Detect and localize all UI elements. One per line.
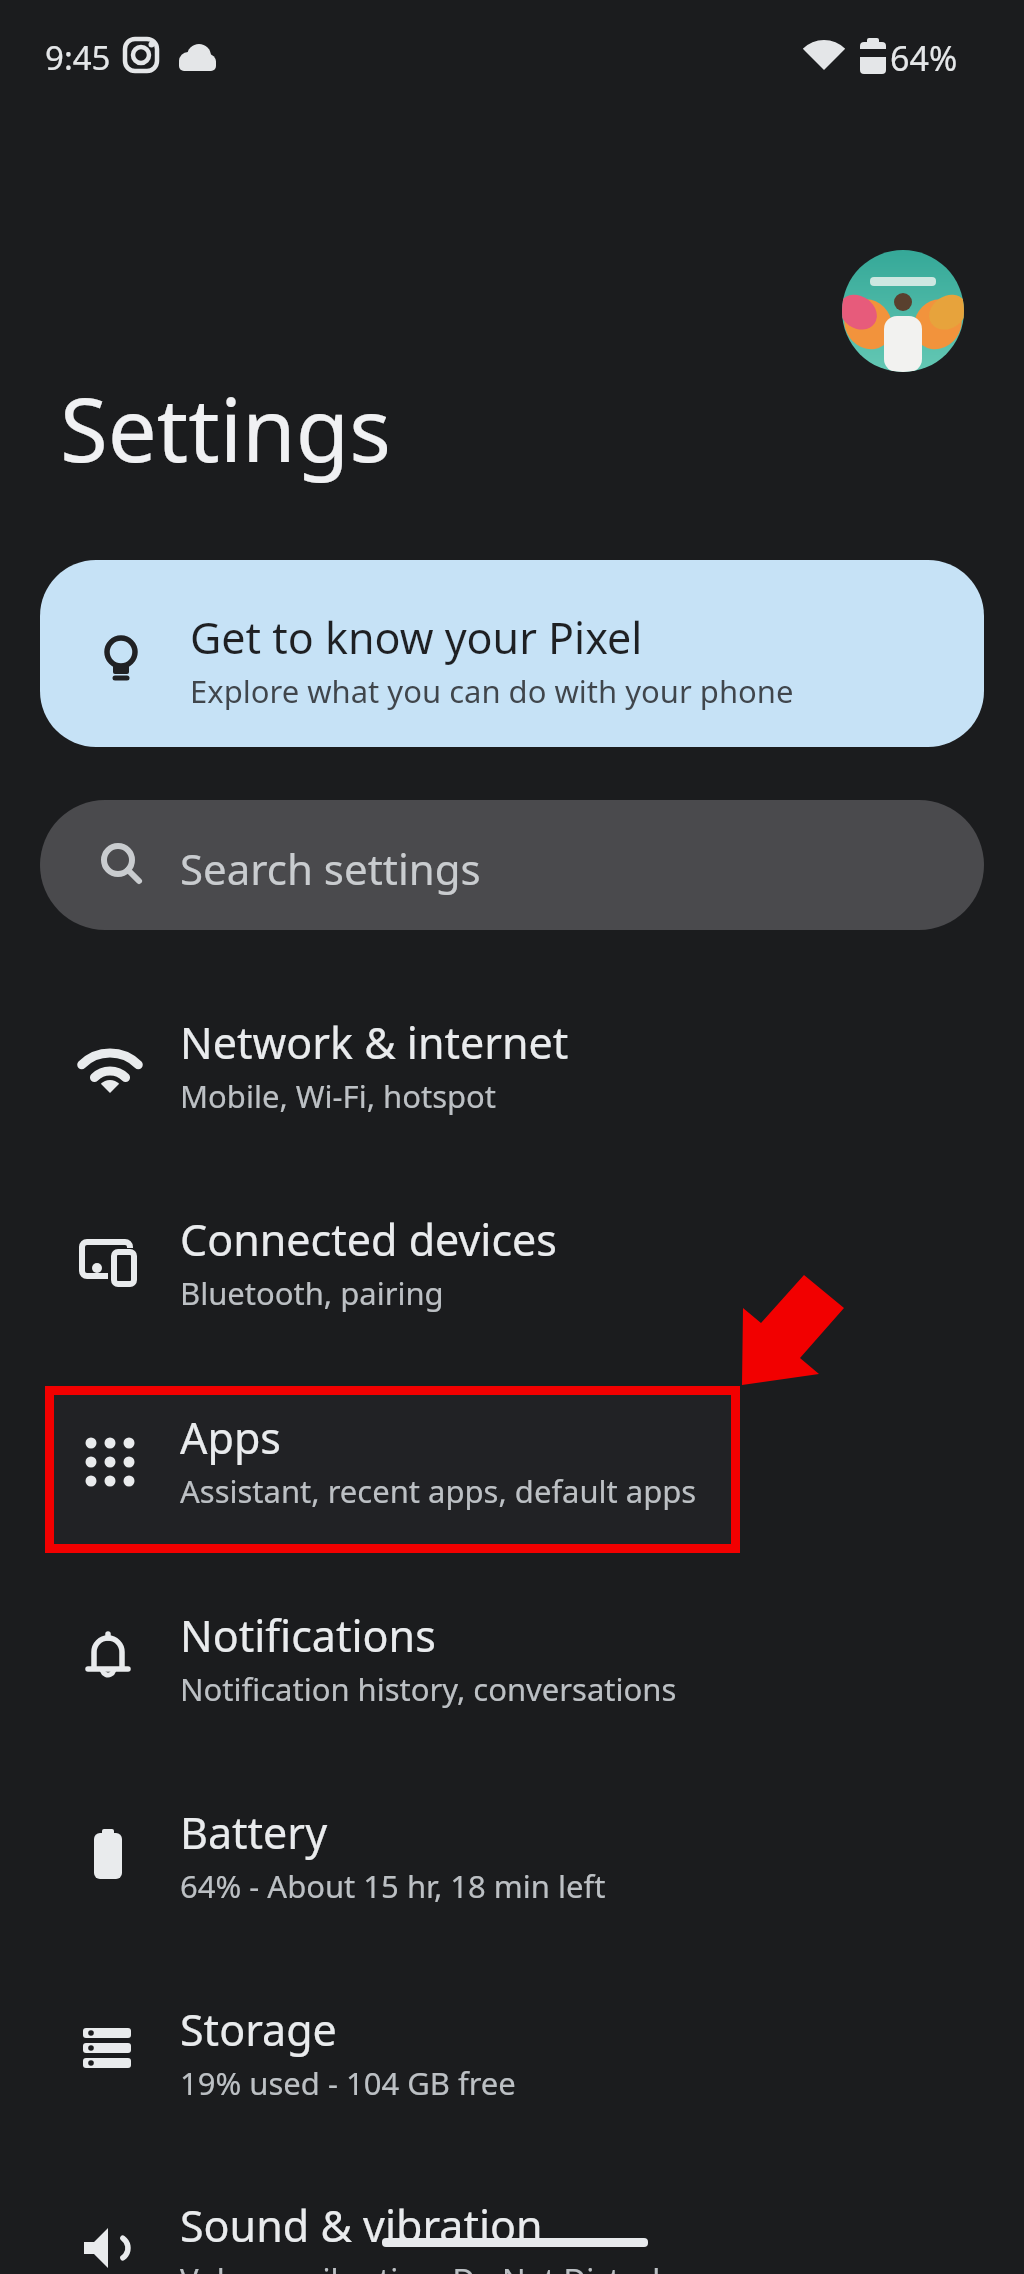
- staticText: Connected devices: [180, 1210, 557, 1269]
- staticText: Apps: [180, 1408, 281, 1467]
- button[interactable]: Battery: [40, 1770, 984, 1940]
- staticText: Search settings: [180, 840, 481, 897]
- button[interactable]: Storage: [40, 1967, 984, 2137]
- staticText: 64% - About 15 hr, 18 min left: [180, 1865, 606, 1907]
- staticText: Settings: [60, 369, 392, 487]
- button[interactable]: Network & internet: [40, 980, 984, 1150]
- staticText: 9:45: [45, 35, 111, 80]
- staticText: Sound & vibration: [180, 2196, 543, 2255]
- button[interactable]: Connected devices: [40, 1177, 984, 1347]
- staticText: Notification history, conversations: [180, 1668, 677, 1710]
- staticText: Assistant, recent apps, default apps: [180, 1470, 697, 1512]
- button[interactable]: Sound & vibration: [40, 2163, 984, 2274]
- staticText: Network & internet: [180, 1013, 569, 1072]
- staticText: 64%: [890, 35, 958, 81]
- staticText: Bluetooth, pairing: [180, 1272, 444, 1314]
- staticText: Explore what you can do with your phone: [190, 670, 794, 712]
- staticText: Get to know your Pixel: [190, 608, 643, 667]
- staticText: Battery: [180, 1803, 328, 1862]
- button[interactable]: [842, 250, 964, 372]
- staticText: Mobile, Wi-Fi, hotspot: [180, 1075, 497, 1117]
- button[interactable]: Get to know your Pixel: [40, 560, 984, 747]
- button[interactable]: Apps: [40, 1375, 984, 1545]
- staticText: Notifications: [180, 1606, 436, 1665]
- staticText: Storage: [180, 2000, 337, 2059]
- button[interactable]: Search settings: [40, 800, 984, 930]
- button[interactable]: Notifications: [40, 1573, 984, 1743]
- staticText: Volume, vibration, Do Not Disturb: [180, 2258, 672, 2274]
- staticText: 19% used - 104 GB free: [180, 2062, 516, 2104]
